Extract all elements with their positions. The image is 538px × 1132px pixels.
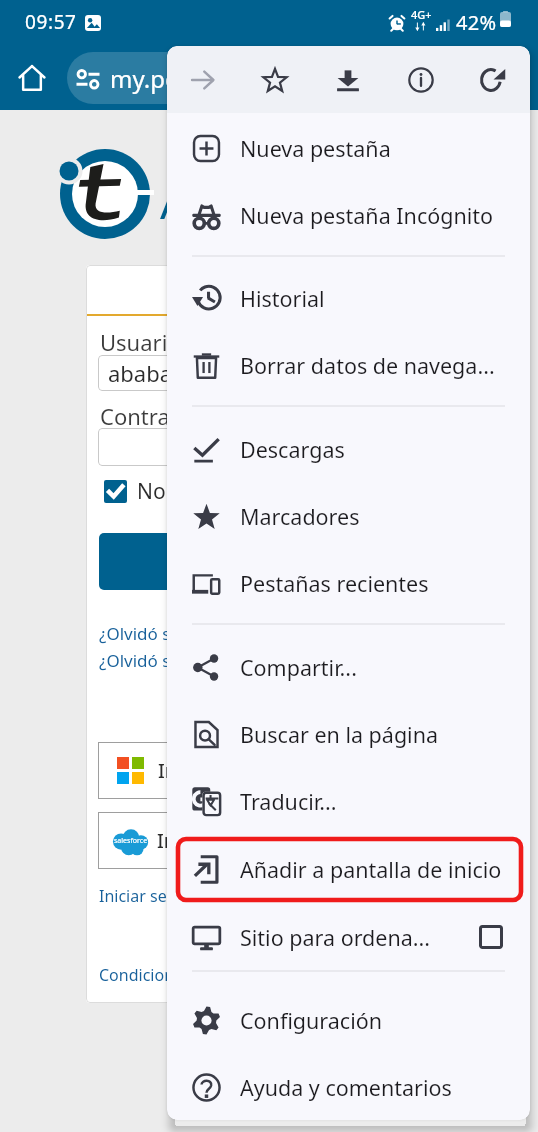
button[interactable]: Condiciones de uso (99, 964, 246, 986)
staticText: Usuario (100, 327, 181, 357)
staticText: Contraseña (100, 401, 219, 431)
staticText: 42% (456, 9, 497, 36)
staticText: Nueva pestaña (240, 134, 391, 163)
button[interactable]: salesforce (98, 812, 431, 869)
button[interactable]: Iniciar sesión con Microsoft (98, 742, 431, 799)
button[interactable]: Historial (167, 265, 530, 331)
button[interactable]: Nueva pestaña (167, 115, 530, 181)
button[interactable]: Reload (469, 56, 517, 104)
staticText: ababalaguer (108, 358, 239, 388)
staticText: salesforce (114, 836, 148, 846)
staticText: Iniciar sesión (193, 546, 336, 577)
staticText: A (160, 168, 191, 233)
button[interactable]: Forward (179, 56, 227, 104)
button[interactable]: Descargas (167, 416, 530, 482)
staticText: Historial (240, 284, 325, 313)
button[interactable]: ¿Olvidó su usuario? (99, 622, 254, 645)
staticText: Pestañas recientes (240, 569, 429, 598)
staticText: No cerrar sesión (137, 477, 299, 506)
button[interactable]: Configuración (167, 987, 530, 1053)
button[interactable]: Iniciar sesión (99, 533, 429, 590)
button[interactable]: Sitio para ordena... (167, 904, 530, 970)
button[interactable]: Home (10, 56, 54, 100)
button[interactable]: Marcadores (167, 483, 530, 549)
staticText: Compartir... (240, 653, 357, 682)
button[interactable]: Pestañas recientes (167, 550, 530, 616)
button[interactable]: Borrar datos de navega... (167, 332, 530, 398)
staticText: Iniciar sesión con Microsoft (158, 758, 407, 784)
button[interactable]: Buscar en la página (167, 701, 530, 767)
staticText: Sitio para ordena... (240, 923, 431, 952)
staticText: Descargas (240, 435, 345, 464)
button[interactable]: Iniciar sesión con SSO (99, 885, 264, 907)
button[interactable]: Ayuda y comentarios (167, 1054, 530, 1120)
button[interactable]: Nueva pestaña Incógnito (167, 182, 530, 248)
button[interactable]: Añadir a pantalla de inicio (167, 836, 530, 902)
button[interactable]: ¿Olvidó su contraseña? (99, 649, 282, 672)
button[interactable]: Traducir... (167, 768, 530, 834)
staticText: 09:57 (25, 9, 77, 35)
button[interactable]: Download (324, 56, 372, 104)
staticText: Nueva pestaña Incógnito (240, 201, 494, 230)
staticText: my.portal.com (110, 62, 273, 95)
staticText: Buscar en la página (240, 720, 439, 749)
button[interactable]: Page info (397, 56, 445, 104)
button[interactable]: my.portal.com (67, 52, 487, 104)
button[interactable]: Compartir... (167, 634, 530, 700)
staticText: Iniciar sesión con Salesforce (157, 828, 413, 854)
staticText: Ayuda y comentarios (240, 1073, 452, 1102)
staticText: Configuración (240, 1006, 383, 1035)
staticText: Borrar datos de navega... (240, 351, 495, 380)
staticText: 4G+ (411, 7, 432, 22)
staticText: Añadir a pantalla de inicio (240, 855, 502, 884)
staticText: Marcadores (240, 502, 360, 531)
staticText: Traducir... (240, 787, 337, 816)
button[interactable]: Bookmark (251, 56, 299, 104)
